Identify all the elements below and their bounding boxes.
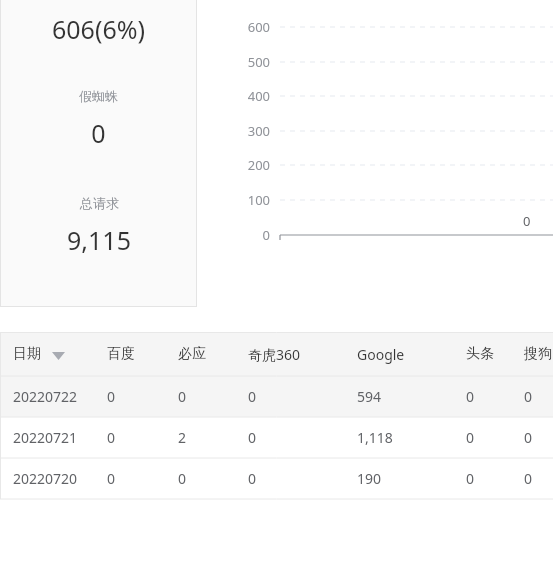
staticText: 0: [107, 428, 116, 447]
staticText: 0: [178, 387, 187, 406]
staticText: 0: [91, 116, 106, 150]
staticText: 200: [230, 156, 270, 174]
staticText: 0: [524, 428, 533, 447]
button[interactable]: 20220722: [0, 376, 553, 417]
staticText: 0: [248, 469, 257, 488]
staticText: 606(6%): [52, 12, 145, 46]
staticText: 9,115: [67, 223, 131, 257]
staticText: 0: [107, 387, 116, 406]
staticText: 总请求: [80, 195, 119, 211]
staticText: 日期: [13, 345, 41, 363]
staticText: 0: [524, 387, 533, 406]
staticText: 0: [524, 469, 533, 488]
staticText: 0: [466, 387, 475, 406]
button[interactable]: 20220720: [0, 458, 553, 499]
staticText: 0: [178, 469, 187, 488]
staticText: 假蜘蛛: [79, 88, 118, 104]
staticText: 头条: [466, 345, 494, 363]
staticText: 0: [248, 428, 257, 447]
staticText: 必应: [178, 345, 206, 363]
button[interactable]: 20220721: [0, 417, 553, 458]
button[interactable]: 606(6%): [0, 0, 197, 307]
staticText: 100: [230, 191, 270, 209]
staticText: 500: [230, 53, 270, 71]
staticText: 2: [178, 428, 187, 447]
staticText: 600: [230, 18, 270, 36]
staticText: 20220721: [13, 428, 78, 447]
staticText: 0: [466, 428, 475, 447]
staticText: 20220722: [13, 387, 78, 406]
staticText: 300: [230, 122, 270, 140]
staticText: 20220720: [13, 469, 78, 488]
staticText: 0: [248, 387, 257, 406]
staticText: 0: [523, 212, 531, 230]
staticText: 1,118: [357, 428, 393, 447]
staticText: 0: [230, 226, 270, 244]
staticText: 百度: [107, 345, 135, 363]
staticText: 0: [466, 469, 475, 488]
staticText: 0: [107, 469, 116, 488]
button[interactable]: 日期: [0, 332, 553, 376]
staticText: 奇虎360: [248, 345, 301, 364]
staticText: 搜狗: [524, 345, 552, 363]
staticText: 190: [357, 469, 382, 488]
staticText: Google: [357, 345, 405, 364]
button[interactable]: Sort by date: [50, 346, 70, 362]
staticText: 400: [230, 87, 270, 105]
staticText: 594: [357, 387, 382, 406]
